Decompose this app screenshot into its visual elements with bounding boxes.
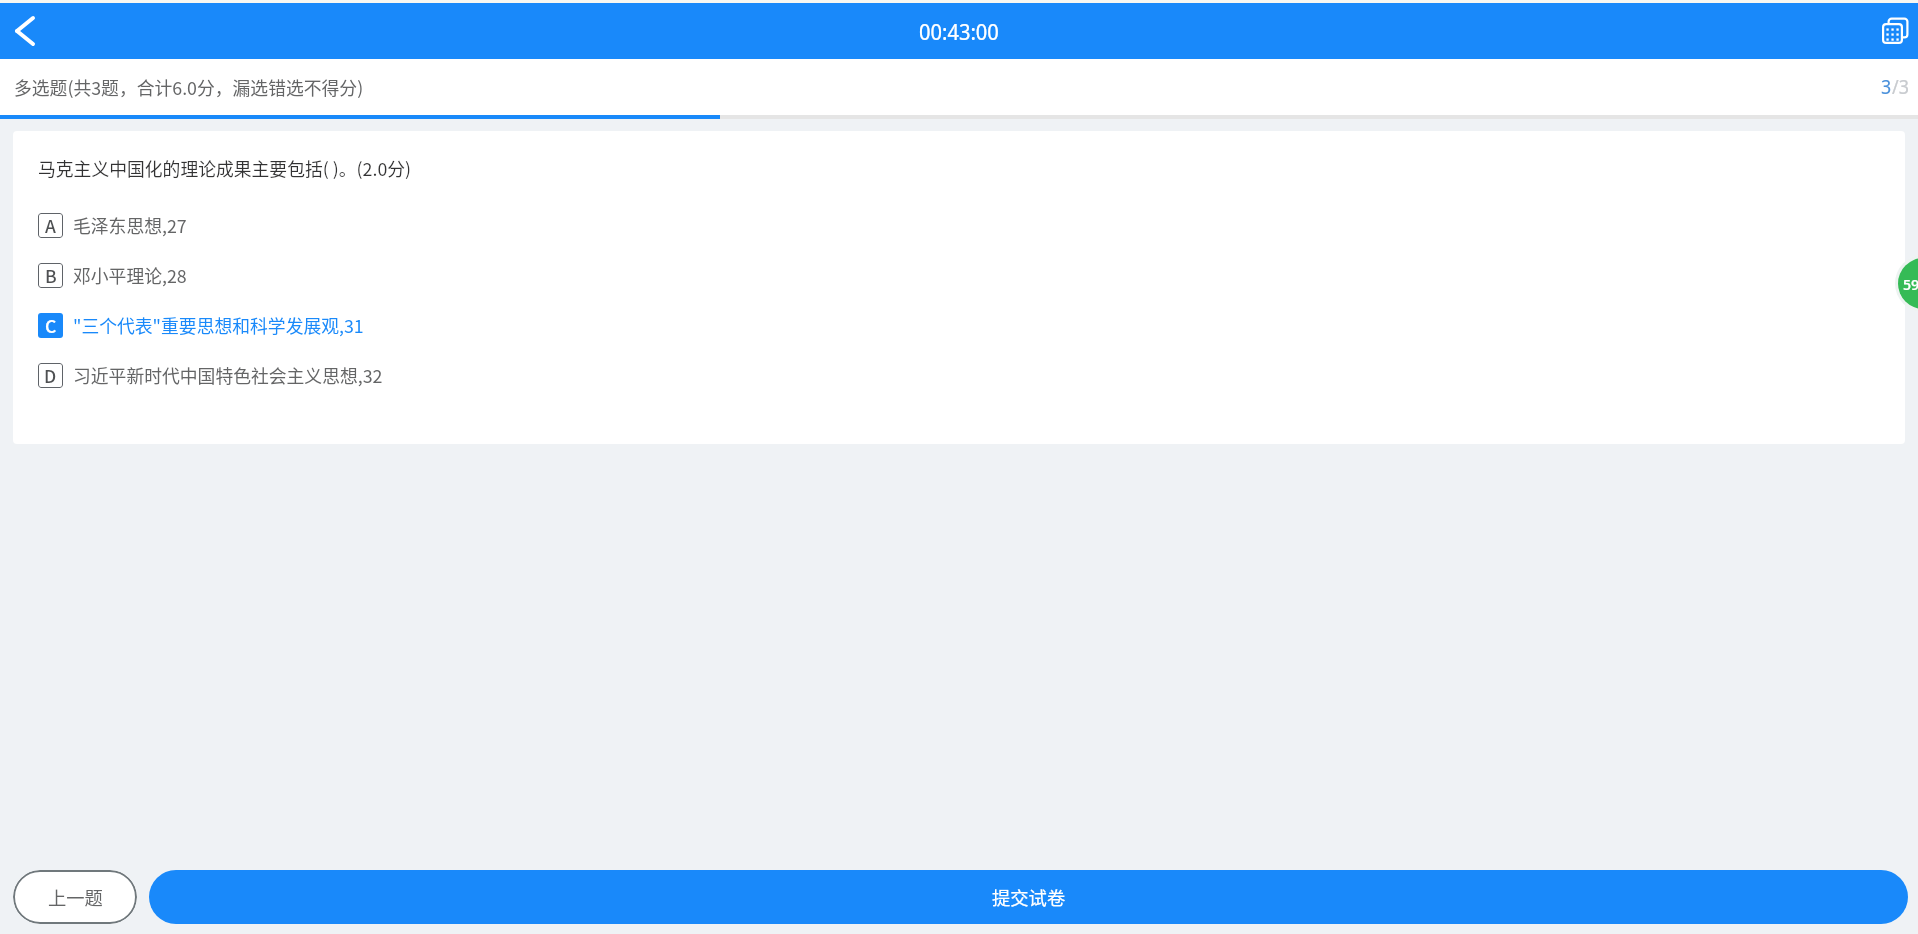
staticText: B — [45, 263, 57, 288]
staticText: 上一题 — [48, 884, 103, 910]
staticText: C — [45, 313, 57, 338]
button[interactable]: C — [13, 300, 1905, 350]
staticText: "三个代表"重要思想和科学发展观,31 — [73, 312, 364, 338]
button[interactable]: Back — [0, 3, 49, 59]
staticText: 毛泽东思想,27 — [73, 212, 187, 238]
staticText: 多选题(共3题，合计6.0分，漏选错选不得分) — [14, 74, 364, 100]
staticText: 59 — [1903, 274, 1918, 294]
button[interactable]: A — [13, 200, 1905, 250]
staticText: 习近平新时代中国特色社会主义思想,32 — [73, 362, 383, 388]
staticText: 邓小平理论,28 — [73, 262, 187, 288]
button[interactable]: B — [13, 250, 1905, 300]
button[interactable]: Question list — [1873, 3, 1918, 59]
button[interactable]: 提交试卷 — [149, 870, 1908, 924]
staticText: 马克主义中国化的理论成果主要包括( )。(2.0分) — [38, 155, 412, 181]
button[interactable]: 上一题 — [13, 870, 137, 924]
staticText: A — [45, 213, 56, 238]
staticText: 3 — [1881, 74, 1892, 100]
staticText: 提交试卷 — [992, 884, 1066, 910]
button[interactable]: Remaining questions — [1895, 255, 1918, 312]
button[interactable]: D — [13, 350, 1905, 400]
staticText: 00:43:00 — [919, 17, 999, 46]
staticText: D — [44, 363, 57, 388]
staticText: /3 — [1892, 74, 1909, 100]
